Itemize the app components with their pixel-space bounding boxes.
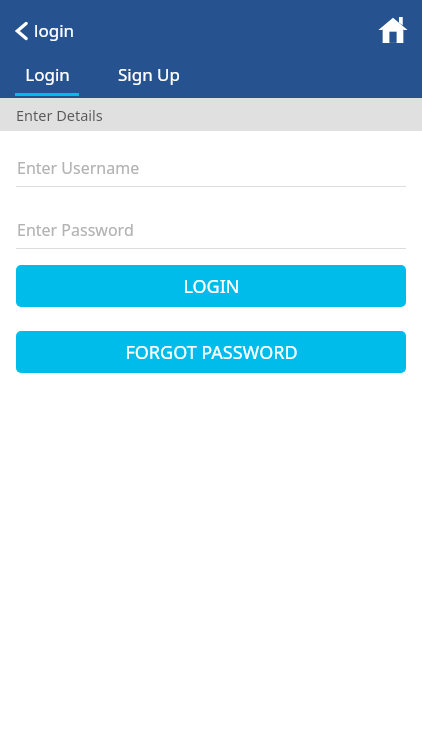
button[interactable]: Enter Password	[0, 217, 422, 249]
staticText: Enter Details	[16, 105, 103, 125]
button[interactable]: Enter Username	[0, 155, 422, 187]
button[interactable]: FORGOT PASSWORD	[16, 331, 406, 373]
staticText: Login	[25, 63, 70, 86]
staticText: FORGOT PASSWORD	[125, 340, 298, 365]
button[interactable]: login	[0, 13, 85, 48]
button[interactable]: Login	[0, 60, 94, 98]
button[interactable]: Sign Up	[94, 60, 204, 98]
button[interactable]: LOGIN	[16, 265, 406, 307]
staticText: Enter Username	[17, 157, 140, 179]
staticText: Enter Password	[17, 219, 134, 241]
staticText: LOGIN	[183, 274, 240, 299]
staticText: login	[34, 19, 75, 42]
button[interactable]: Home	[364, 8, 422, 52]
staticText: Sign Up	[118, 63, 180, 86]
